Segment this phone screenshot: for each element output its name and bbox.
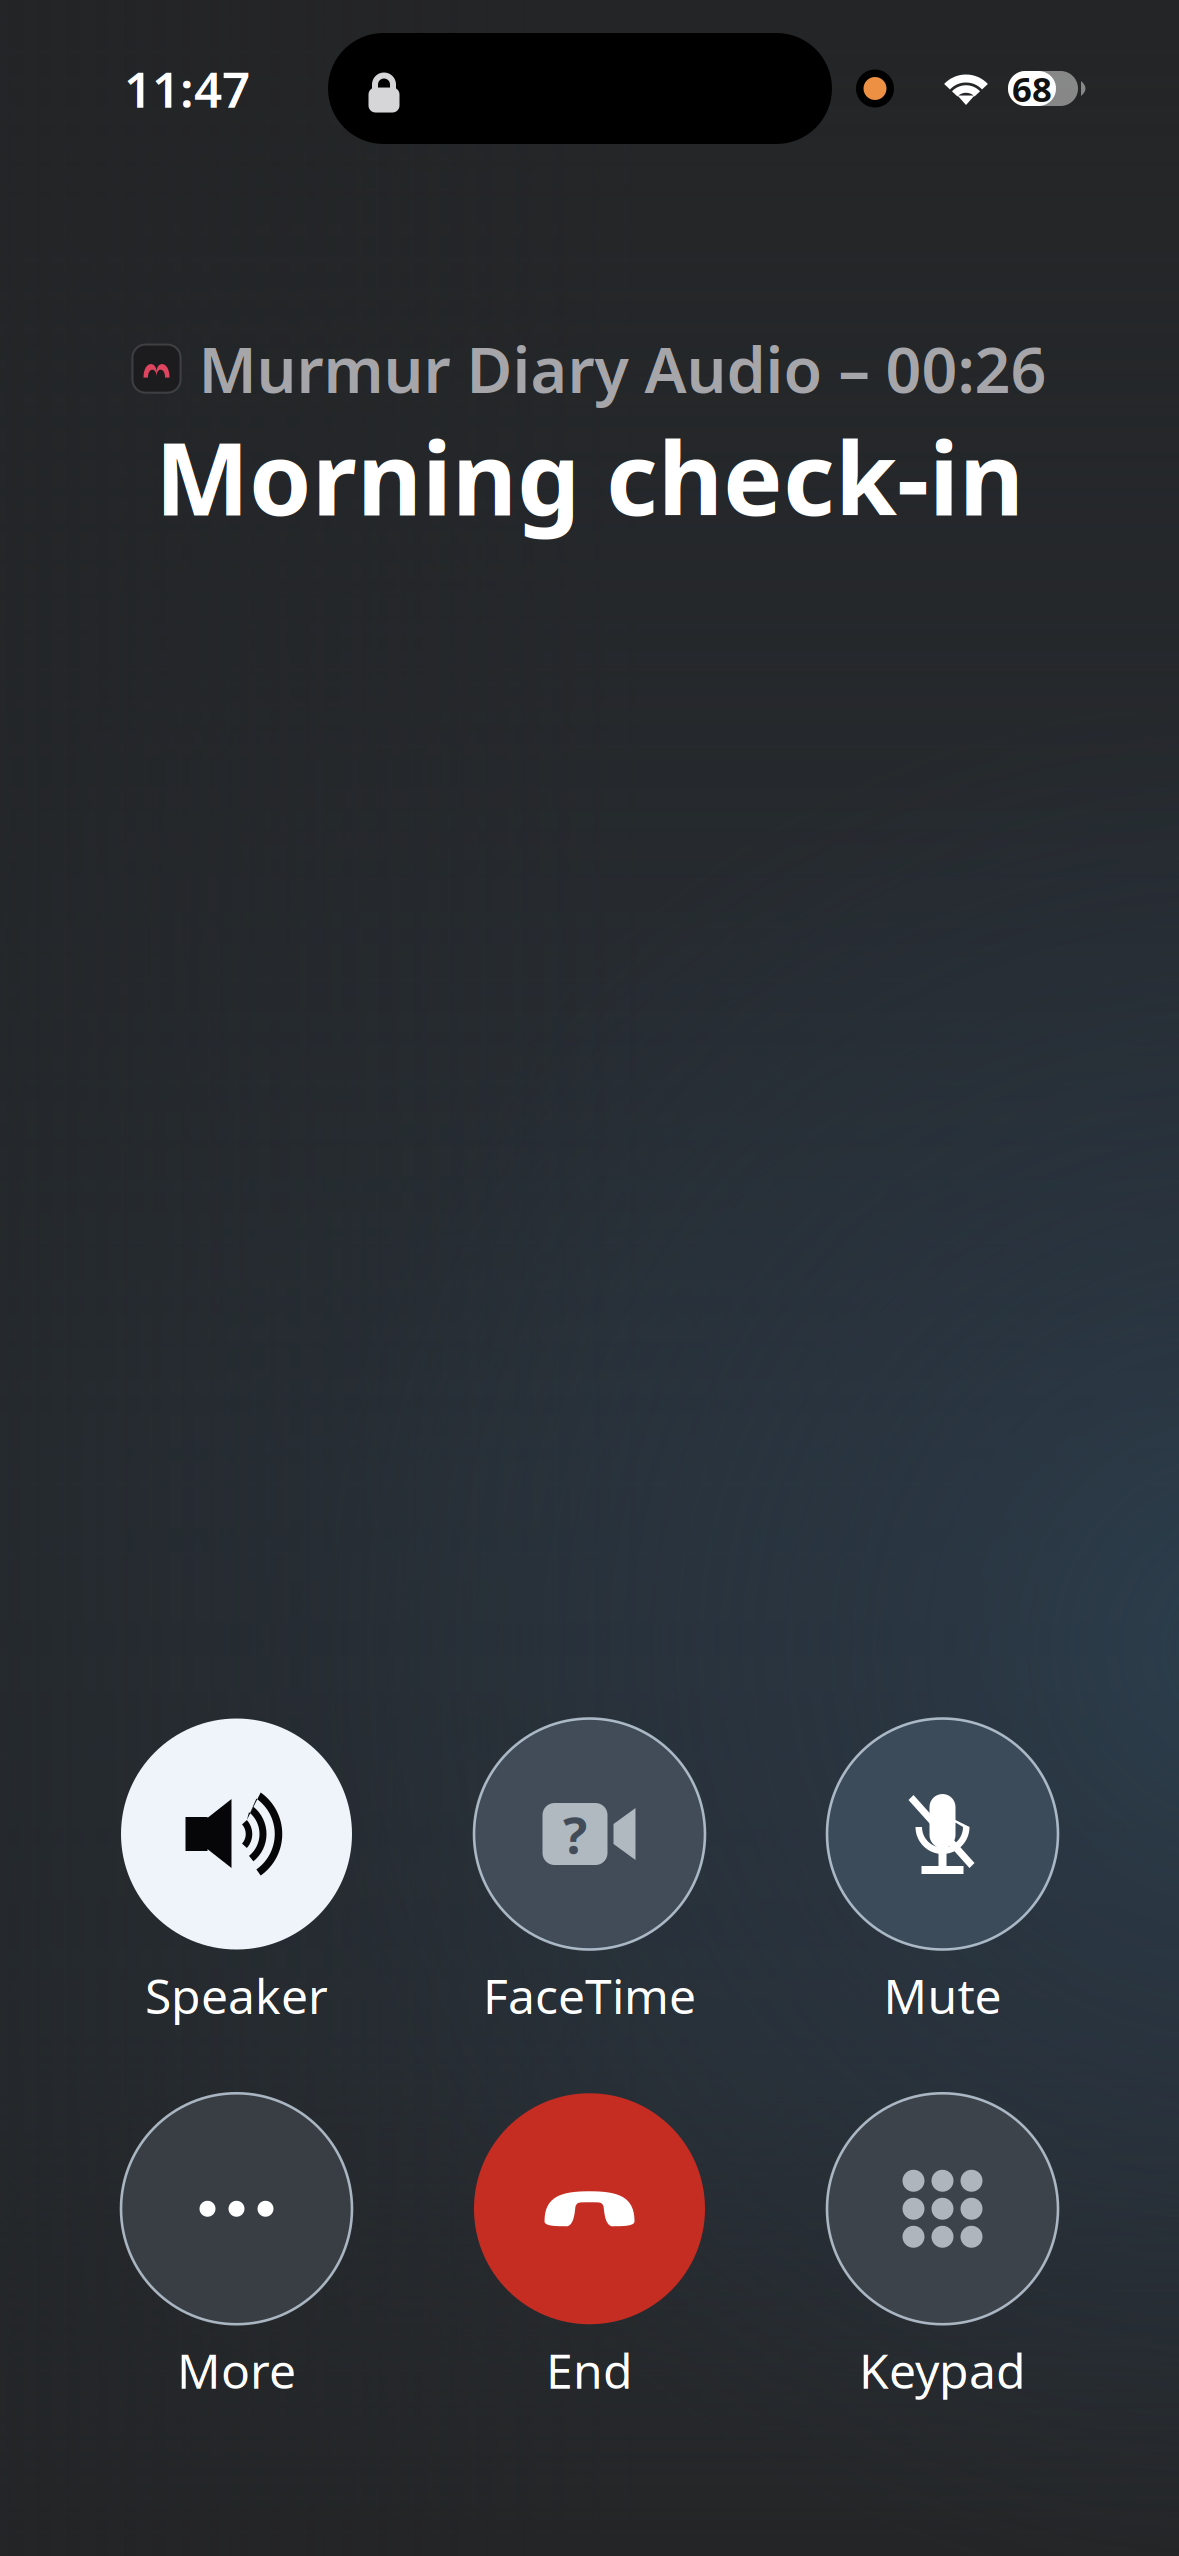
button[interactable]: ?: [474, 1718, 705, 2027]
button[interactable]: Speaker: [121, 1718, 352, 2027]
staticText: Keypad: [859, 2338, 1026, 2402]
staticText: More: [177, 2338, 296, 2402]
staticText: Speaker: [145, 1963, 328, 2027]
staticText: 68: [1012, 65, 1052, 111]
button[interactable]: Mute: [827, 1718, 1058, 2027]
staticText: Morning check-in: [155, 410, 1024, 543]
staticText: ?: [563, 1800, 587, 1868]
staticText: FaceTime: [483, 1963, 696, 2027]
button[interactable]: More: [121, 2093, 352, 2402]
button[interactable]: Keypad: [827, 2093, 1058, 2402]
staticText: 11:47: [124, 56, 250, 121]
staticText: End: [546, 2338, 633, 2402]
button[interactable]: End: [474, 2093, 705, 2402]
staticText: Mute: [883, 1963, 1001, 2027]
staticText: Murmur Diary Audio – 00:26: [198, 327, 1046, 410]
